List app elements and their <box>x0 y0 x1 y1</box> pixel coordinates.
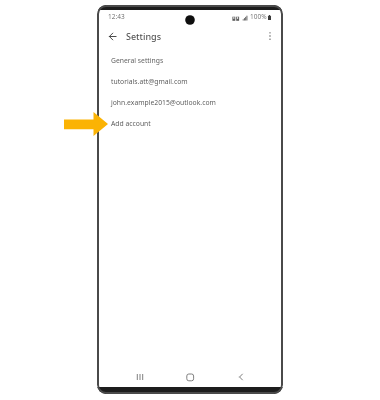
button[interactable]: Add account <box>97 113 283 134</box>
staticText: Add account <box>111 119 151 128</box>
button[interactable]: Recent apps <box>132 371 148 383</box>
staticText: 100% <box>250 12 267 21</box>
staticText: john.example2015@outlook.com <box>111 98 216 107</box>
button[interactable]: john.example2015@outlook.com <box>97 92 283 113</box>
staticText: Settings <box>126 30 162 42</box>
button[interactable]: Back <box>235 371 247 383</box>
button[interactable]: More options <box>265 31 275 41</box>
staticText: tutorials.att@gmail.com <box>111 77 188 86</box>
button[interactable]: tutorials.att@gmail.com <box>97 71 283 92</box>
staticText: 12:43 <box>108 12 125 21</box>
staticText: General settings <box>111 56 164 65</box>
button[interactable]: Navigate up <box>106 30 119 43</box>
other: Arrow pointing at Add account <box>64 112 108 136</box>
button[interactable]: General settings <box>97 50 283 71</box>
button[interactable]: Home <box>183 371 197 383</box>
